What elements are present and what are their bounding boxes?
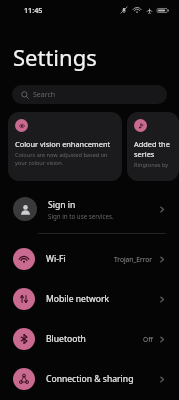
staticText: Colours are now adjusted based on <box>15 151 108 159</box>
other: Open Bluetooth <box>158 334 166 345</box>
button[interactable]: Added the Colour OS 15 <box>127 112 179 181</box>
staticText: Added the Colour OS 15 <box>134 139 172 149</box>
staticText: 11:45 <box>24 5 43 15</box>
button[interactable]: Mobile network <box>0 281 179 317</box>
staticText: Bluetooth <box>46 333 86 345</box>
staticText: Mobile network <box>46 293 110 305</box>
staticText: Sign in <box>48 199 76 211</box>
button[interactable]: Sign in <box>0 190 179 228</box>
button[interactable]: Connection & sharing <box>0 361 179 397</box>
staticText: Ringtones by Hans Zimmer <box>134 161 172 169</box>
staticText: your colour vision. <box>15 159 64 167</box>
other: Open Sign in <box>158 204 166 215</box>
button[interactable]: Wi-Fi <box>0 241 179 277</box>
button[interactable]: Bluetooth <box>0 321 179 357</box>
staticText: Wi-Fi <box>46 253 66 265</box>
staticText: Connection & sharing <box>46 373 134 385</box>
staticText: Search <box>33 90 56 100</box>
staticText: Off <box>143 335 153 344</box>
staticText: Settings <box>13 42 97 72</box>
staticText: Sign in to use services. <box>48 212 114 220</box>
button[interactable]: Search <box>12 85 167 104</box>
button[interactable]: Colour vision enhancement <box>8 112 122 181</box>
other: Open Wi-Fi <box>158 254 166 265</box>
staticText: Trojan_Error <box>114 255 153 264</box>
other: Open Mobile network <box>158 294 166 305</box>
staticText: Colour vision enhancement <box>15 139 111 149</box>
other: Open Connection & sharing <box>158 374 166 385</box>
staticText: series <box>134 149 155 159</box>
